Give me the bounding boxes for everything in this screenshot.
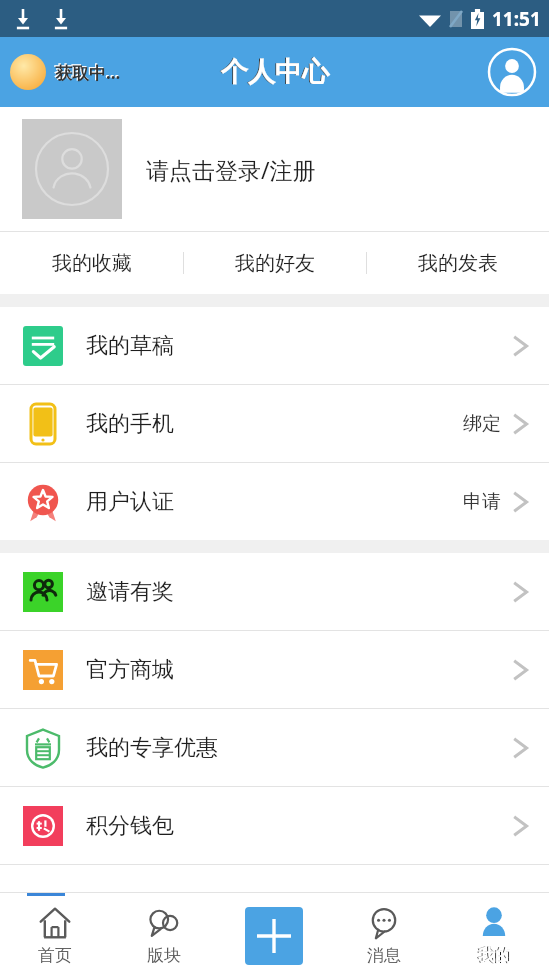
button[interactable]: 请点击登录/注册 <box>0 107 549 231</box>
button[interactable]: 我的草稿 <box>0 307 549 385</box>
button[interactable]: 消息 <box>329 896 439 976</box>
staticText: 用户认证 <box>86 488 174 516</box>
staticText: 我的好友 <box>235 251 315 276</box>
staticText: 我的手机 <box>86 410 174 438</box>
button[interactable]: 获取中... <box>10 54 121 90</box>
staticText: 我的 <box>478 945 512 966</box>
button[interactable]: 我的 <box>439 896 549 976</box>
staticText: 个人中心 <box>221 55 329 89</box>
staticText: 获取中... <box>55 61 121 84</box>
staticText: 我的发表 <box>418 251 498 276</box>
button[interactable]: 官方商城 <box>0 631 549 709</box>
button[interactable]: 首页 <box>0 896 109 976</box>
staticText: 版块 <box>147 945 181 966</box>
button[interactable]: 积分钱包 <box>0 787 549 865</box>
staticText: 获取中... <box>54 60 120 83</box>
button[interactable]: 版块 <box>109 896 219 976</box>
staticText: 邀请有奖 <box>86 578 174 606</box>
button[interactable]: Account <box>489 49 535 95</box>
staticText: 积分钱包 <box>86 812 174 840</box>
staticText: 官方商城 <box>86 656 174 684</box>
button[interactable]: New post <box>219 896 329 976</box>
button[interactable]: 我的发表 <box>367 232 549 294</box>
staticText: 个人中心 <box>220 55 328 89</box>
button[interactable]: 用户认证 <box>0 463 549 540</box>
staticText: 请点击登录/注册 <box>146 154 316 185</box>
button[interactable]: 我的收藏 <box>0 232 183 294</box>
staticText: 我的专享优惠 <box>86 734 218 762</box>
staticText: 我的收藏 <box>52 251 132 276</box>
staticText: 绑定 <box>463 412 501 436</box>
staticText: 首页 <box>38 945 72 966</box>
button[interactable]: 邀请有奖 <box>0 553 549 631</box>
staticText: 我的 <box>477 945 511 966</box>
staticText: 我的草稿 <box>86 332 174 360</box>
button[interactable]: 我的专享优惠 <box>0 709 549 787</box>
button[interactable]: 我的好友 <box>184 232 366 294</box>
staticText: 申请 <box>463 490 501 514</box>
button[interactable]: 我的手机 <box>0 385 549 463</box>
staticText: 消息 <box>367 945 401 966</box>
staticText: 11:51 <box>492 6 541 32</box>
